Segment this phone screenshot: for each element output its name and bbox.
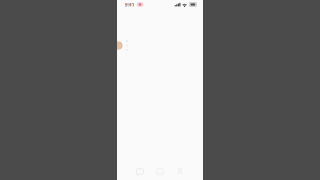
button[interactable]: Conversation (117, 34, 203, 56)
staticText: 9:41 (124, 1, 134, 8)
button[interactable]: Chats (130, 163, 150, 177)
